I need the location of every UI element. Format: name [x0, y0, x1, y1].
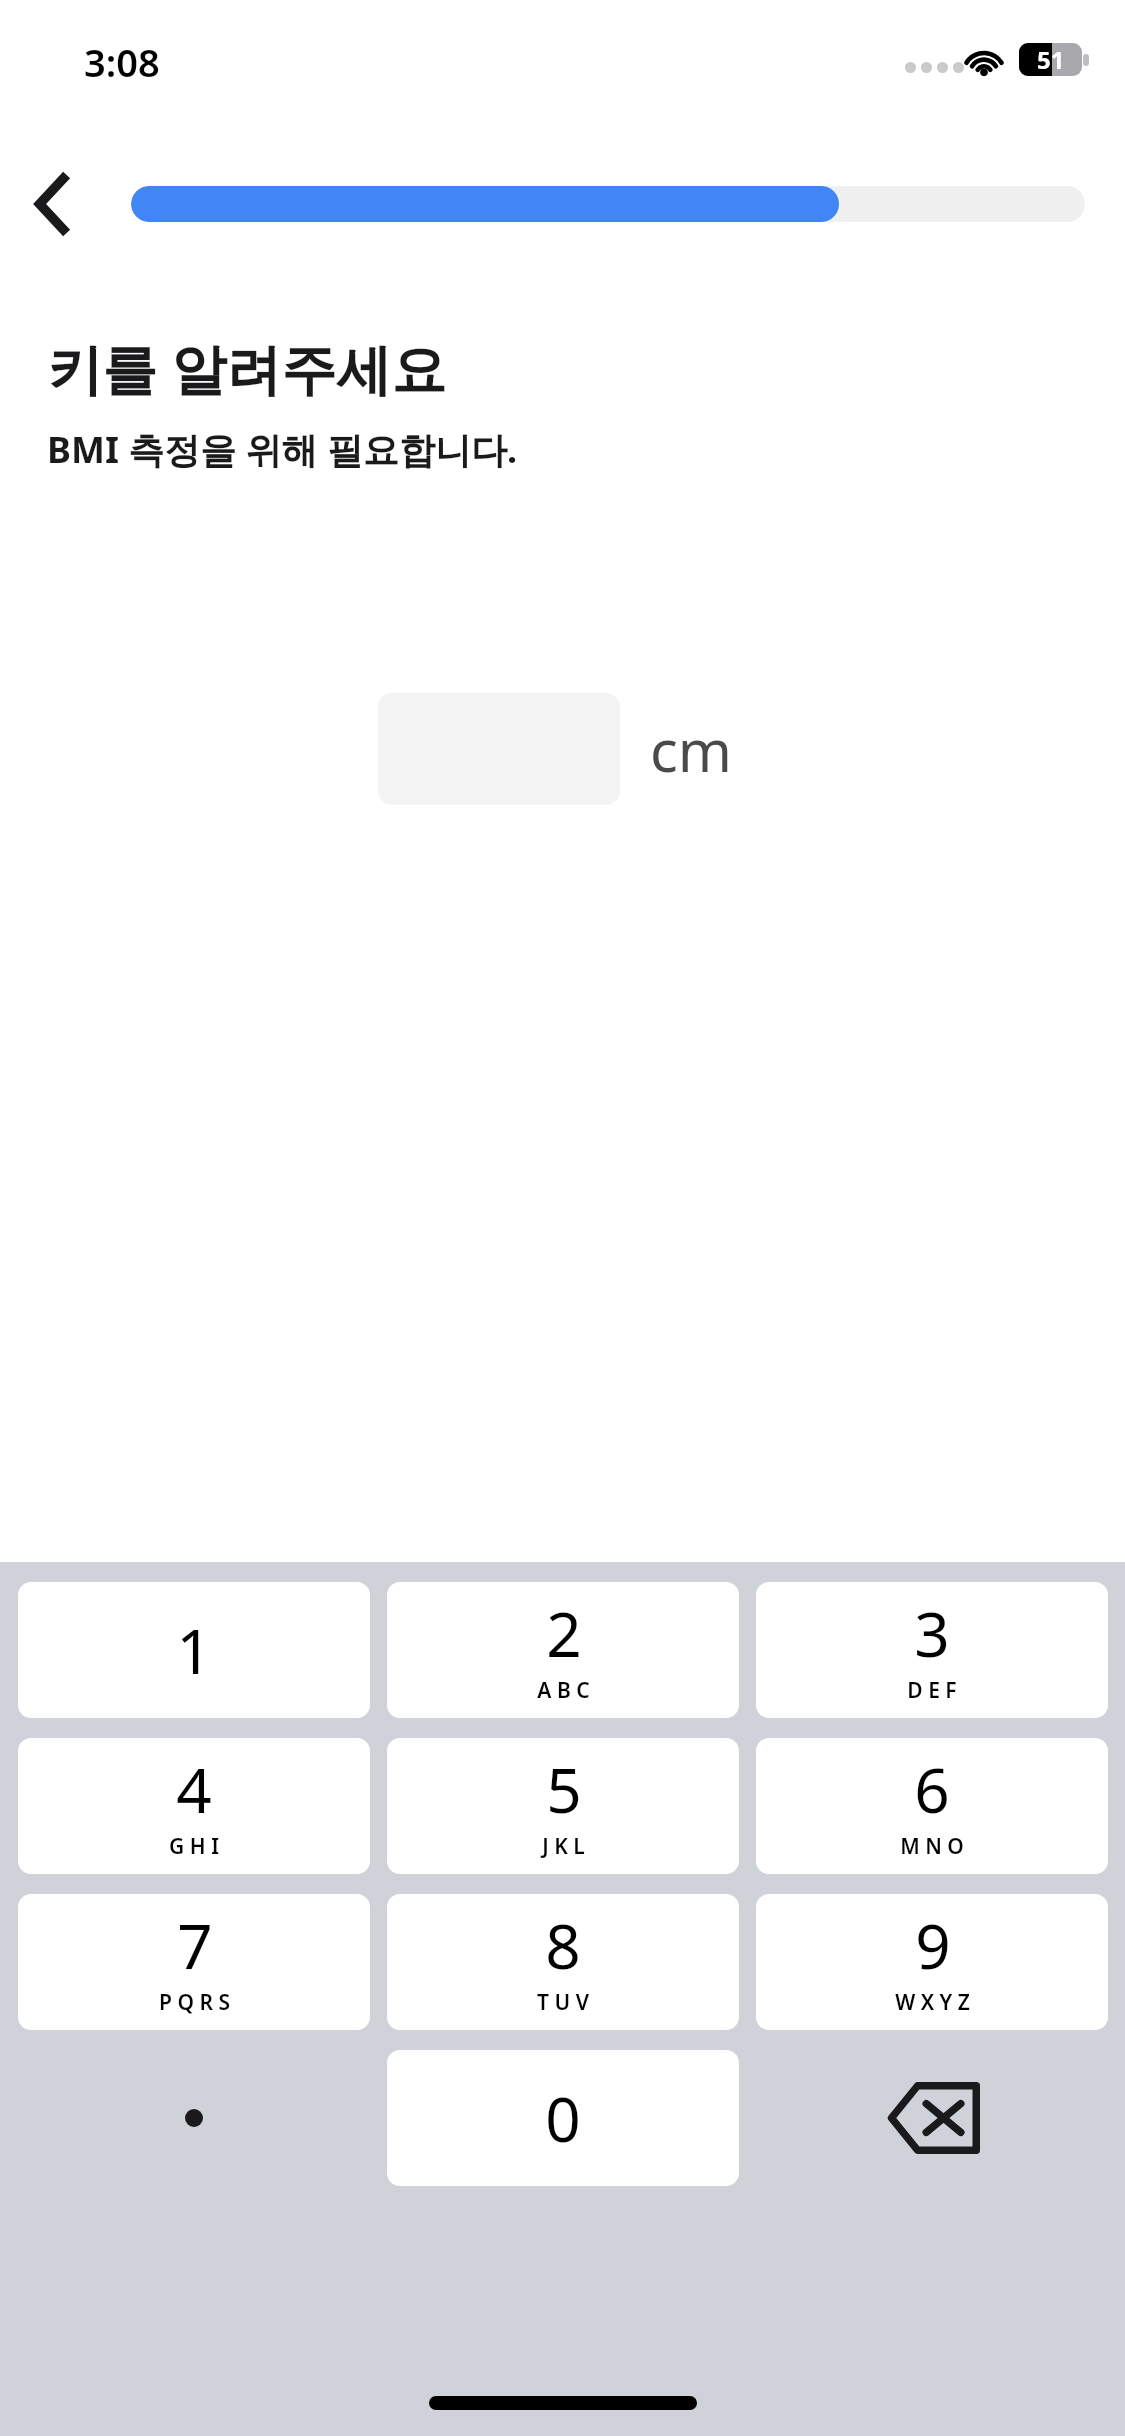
staticText: P Q R S	[159, 1988, 230, 2017]
staticText: 키를 알려주세요	[47, 330, 447, 405]
staticText: D E F	[907, 1676, 957, 1705]
staticText: 4	[176, 1747, 212, 1831]
staticText: W X Y Z	[895, 1988, 970, 2017]
staticText: 6	[914, 1747, 950, 1831]
button[interactable]: 1	[18, 1582, 370, 1718]
button[interactable]: 5	[387, 1738, 739, 1874]
staticText: 9	[915, 1903, 951, 1987]
button[interactable]: 0	[387, 2050, 739, 2186]
button[interactable]: 9	[756, 1894, 1108, 2030]
staticText: G H I	[169, 1832, 219, 1861]
button[interactable]: Backspace	[756, 2050, 1108, 2186]
staticText: 1	[176, 1608, 212, 1692]
staticText: cm	[650, 710, 733, 789]
button[interactable]: 2	[387, 1582, 739, 1718]
button[interactable]: 4	[18, 1738, 370, 1874]
button[interactable]: 8	[387, 1894, 739, 2030]
staticText: T U V	[537, 1988, 589, 2017]
staticText: M N O	[900, 1832, 964, 1861]
staticText: J K L	[542, 1832, 585, 1861]
staticText: 3	[914, 1591, 950, 1675]
staticText: 8	[545, 1903, 581, 1987]
button[interactable]: Back	[8, 158, 100, 250]
staticText: 3:08	[84, 36, 160, 88]
staticText: 7	[177, 1903, 213, 1987]
button[interactable]: 7	[18, 1894, 370, 2030]
staticText: 5	[546, 1747, 582, 1831]
button[interactable]: Decimal point	[18, 2050, 370, 2186]
staticText: 51	[1037, 43, 1065, 76]
staticText: 2	[546, 1591, 582, 1675]
button[interactable]: 3	[756, 1582, 1108, 1718]
staticText: 0	[545, 2076, 581, 2160]
staticText: BMI 측정을 위해 필요합니다.	[47, 425, 518, 474]
button[interactable]: 6	[756, 1738, 1108, 1874]
staticText: A B C	[537, 1676, 590, 1705]
